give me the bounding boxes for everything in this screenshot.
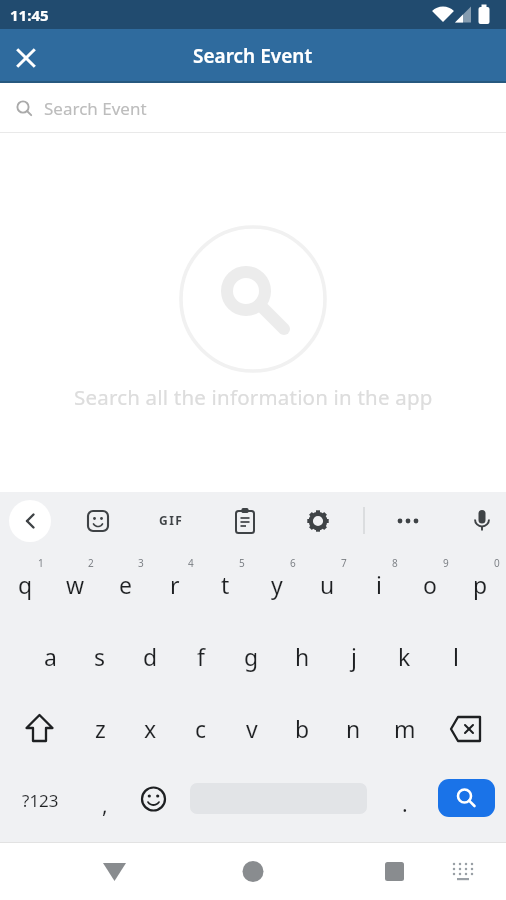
staticText: q (18, 569, 33, 600)
staticText: ?123 (22, 789, 59, 812)
staticText: 8 (392, 556, 398, 570)
button[interactable] (0, 29, 52, 83)
button[interactable]: e (100, 548, 150, 620)
staticText: y (271, 569, 283, 600)
staticText: s (94, 641, 106, 672)
staticText: GIF (159, 512, 184, 528)
button[interactable]: y (251, 548, 302, 620)
button[interactable]: k (379, 620, 430, 692)
button[interactable]: g (226, 620, 277, 692)
button[interactable] (9, 500, 51, 542)
staticText: 3 (138, 556, 144, 570)
staticText: g (244, 641, 259, 672)
staticText: z (95, 713, 106, 744)
staticText: r (170, 569, 180, 600)
staticText: t (221, 569, 230, 600)
button[interactable] (443, 849, 485, 891)
staticText: k (398, 641, 411, 672)
staticText: i (376, 569, 382, 600)
staticText: 0 (494, 556, 500, 570)
button[interactable]: c (175, 692, 226, 764)
button[interactable] (387, 500, 429, 542)
staticText: b (295, 713, 310, 744)
button[interactable]: m (379, 692, 430, 764)
button[interactable]: . (380, 764, 430, 836)
staticText: Search Event (193, 43, 313, 69)
button[interactable]: j (328, 620, 379, 692)
staticText: o (423, 569, 437, 600)
button[interactable] (430, 692, 506, 764)
staticText: n (346, 713, 361, 744)
button[interactable] (297, 500, 339, 542)
staticText: x (144, 713, 157, 744)
staticText: j (351, 641, 357, 672)
staticText: Search Event (44, 97, 147, 120)
staticText: 6 (290, 556, 296, 570)
button[interactable] (77, 500, 119, 542)
staticText: p (473, 569, 488, 600)
button[interactable] (92, 849, 137, 894)
staticText: u (320, 569, 335, 600)
button[interactable]: q (0, 548, 50, 620)
button[interactable] (372, 849, 417, 894)
staticText: m (394, 713, 416, 744)
staticText: w (66, 569, 85, 600)
staticText: 4 (188, 556, 194, 570)
button[interactable]: p (455, 548, 506, 620)
button[interactable]: f (175, 620, 226, 692)
button[interactable] (130, 764, 177, 836)
button[interactable]: h (277, 620, 328, 692)
button[interactable] (438, 779, 495, 817)
staticText: e (119, 569, 132, 600)
button[interactable]: b (277, 692, 328, 764)
staticText: f (197, 641, 205, 672)
staticText: 5 (239, 556, 245, 570)
staticText: 7 (341, 556, 347, 570)
button[interactable] (224, 500, 266, 542)
button[interactable]: , (80, 764, 130, 836)
button[interactable] (461, 500, 503, 542)
button[interactable]: GIF (150, 499, 192, 541)
staticText: Search all the information in the app (74, 383, 433, 411)
staticText: v (246, 713, 258, 744)
staticText: 2 (88, 556, 94, 570)
button[interactable]: t (200, 548, 251, 620)
staticText: c (195, 713, 207, 744)
button[interactable]: s (75, 620, 125, 692)
staticText: 11:45 (10, 5, 49, 25)
button[interactable] (230, 849, 275, 894)
button[interactable] (177, 764, 380, 836)
button[interactable]: l (430, 620, 481, 692)
button[interactable]: w (50, 548, 100, 620)
button[interactable]: z (75, 692, 125, 764)
staticText: l (453, 641, 459, 672)
button[interactable]: o (404, 548, 455, 620)
staticText: d (143, 641, 158, 672)
button[interactable]: Search Event (0, 83, 506, 133)
staticText: 1 (38, 556, 44, 570)
button[interactable]: d (125, 620, 175, 692)
button[interactable]: v (226, 692, 277, 764)
button[interactable]: ?123 (0, 764, 80, 836)
button[interactable]: n (328, 692, 379, 764)
staticText: 9 (443, 556, 449, 570)
staticText: a (44, 641, 57, 672)
button[interactable]: a (25, 620, 75, 692)
button[interactable]: r (150, 548, 200, 620)
button[interactable] (0, 692, 75, 764)
staticText: . (402, 790, 408, 819)
staticText: h (295, 641, 310, 672)
button[interactable]: x (125, 692, 175, 764)
button[interactable]: i (353, 548, 404, 620)
staticText: , (102, 791, 108, 820)
button[interactable]: u (302, 548, 353, 620)
